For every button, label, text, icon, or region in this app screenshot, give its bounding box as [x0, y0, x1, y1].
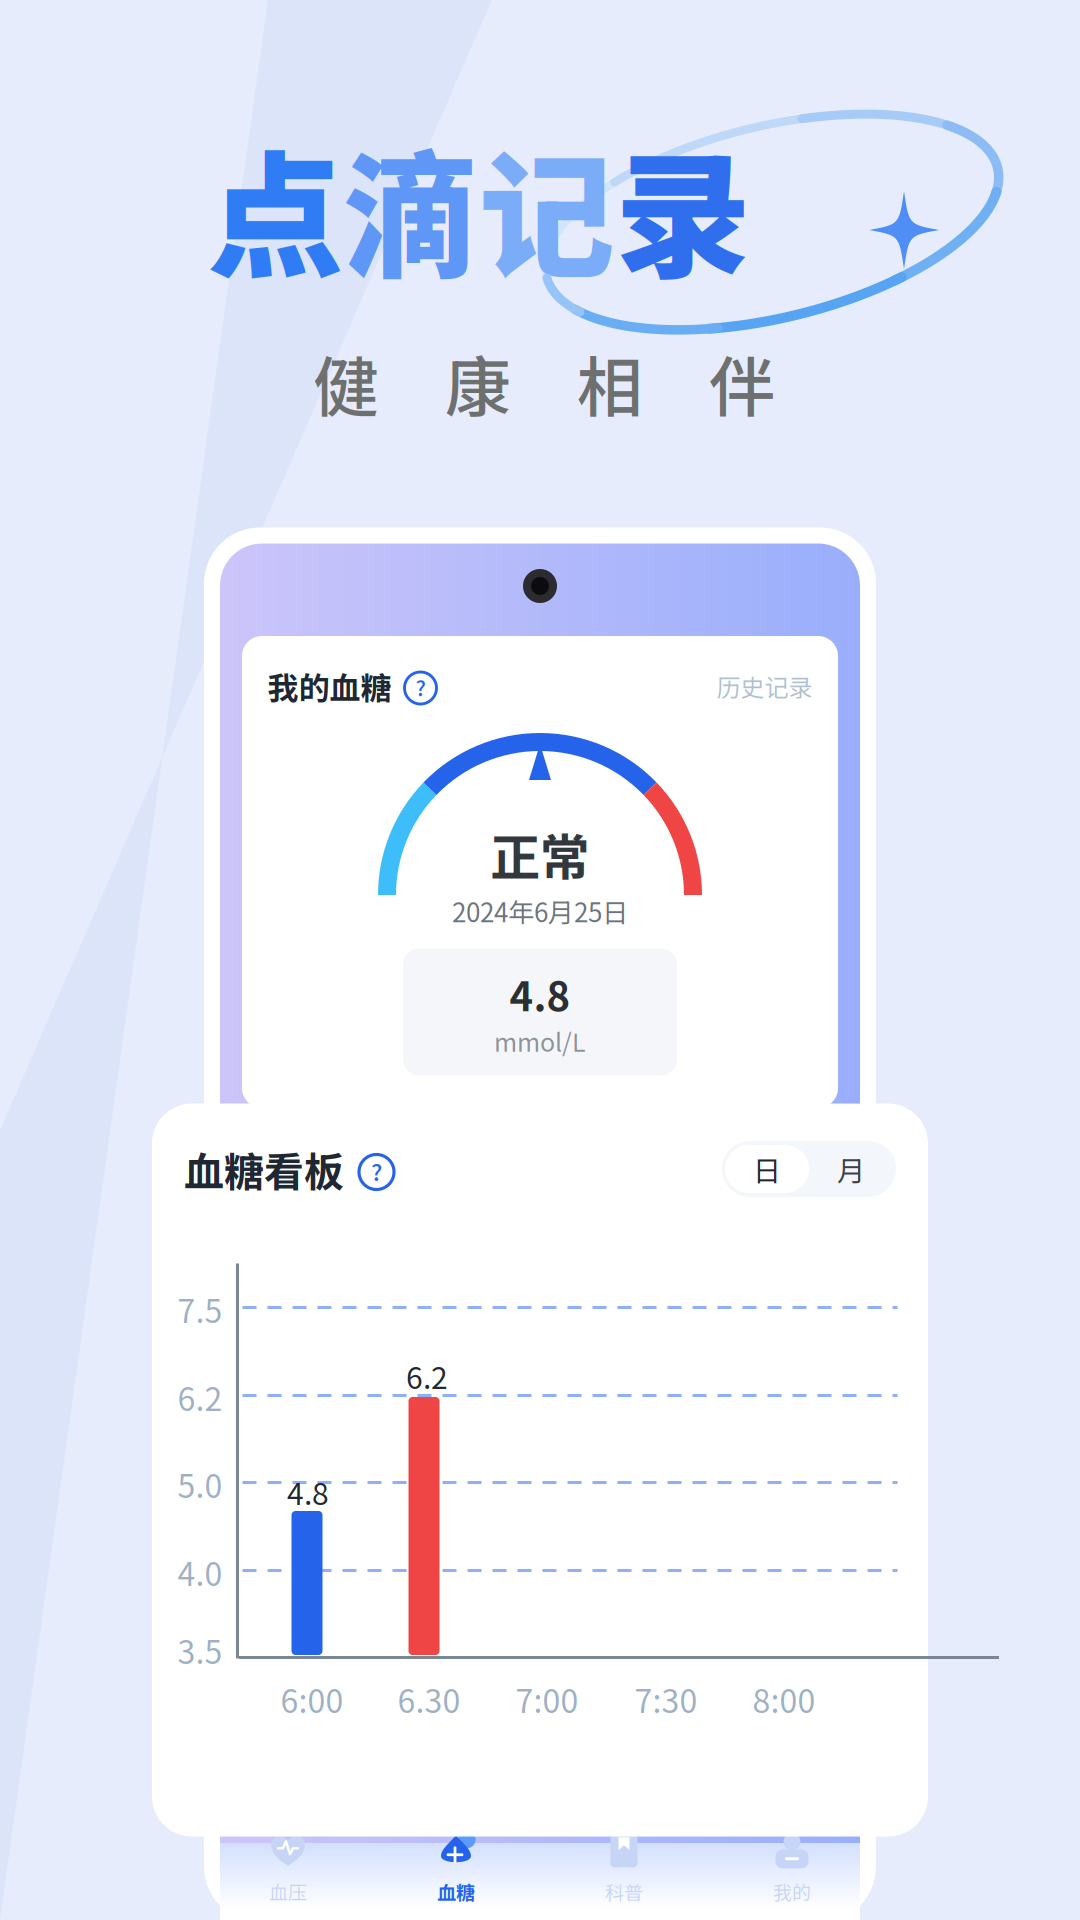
staticText: 7:30	[634, 1676, 697, 1722]
staticText: mmol/L	[494, 1023, 586, 1059]
button[interactable]: 血糖	[372, 1833, 540, 1905]
staticText: 点	[207, 108, 343, 305]
staticText: 5.0	[177, 1461, 222, 1507]
staticText: 6:00	[280, 1676, 343, 1722]
staticText: 6.2	[177, 1374, 222, 1420]
staticText: 滴	[343, 108, 479, 305]
staticText: 月	[837, 1149, 865, 1189]
button[interactable]: 日	[725, 1145, 809, 1193]
button[interactable]: 我的	[708, 1833, 876, 1905]
staticText: 日	[753, 1149, 781, 1189]
staticText: 历史记录	[716, 669, 812, 703]
staticText: 4.8	[509, 965, 570, 1023]
button[interactable]: 月	[809, 1145, 893, 1193]
staticText: 科普	[605, 1878, 643, 1905]
staticText: 7.5	[177, 1286, 222, 1332]
button[interactable]: 历史记录	[716, 669, 812, 703]
staticText: 6.30	[397, 1676, 460, 1722]
staticText: 7:00	[515, 1676, 578, 1722]
button[interactable]: 科普	[540, 1833, 708, 1905]
staticText: 4.0	[177, 1549, 222, 1595]
staticText: 录	[615, 108, 751, 305]
staticText: ?	[371, 1154, 382, 1188]
staticText: 记	[479, 108, 615, 305]
staticText: 血压	[269, 1878, 307, 1905]
staticText: 2024年6月25日	[452, 892, 628, 930]
staticText: 8:00	[752, 1676, 815, 1722]
staticText: 4.8	[287, 1470, 329, 1514]
staticText: 3.5	[177, 1627, 222, 1673]
staticText: 健 康 相 伴	[313, 335, 775, 431]
staticText: 正常	[490, 818, 590, 890]
button[interactable]: 血压	[204, 1833, 372, 1905]
staticText: ?	[415, 672, 425, 702]
staticText: 我的	[773, 1878, 811, 1905]
staticText: 血糖	[437, 1878, 475, 1905]
staticText: 6.2	[406, 1354, 448, 1398]
staticText: 血糖看板	[184, 1140, 344, 1198]
staticText: 我的血糖	[267, 664, 391, 708]
